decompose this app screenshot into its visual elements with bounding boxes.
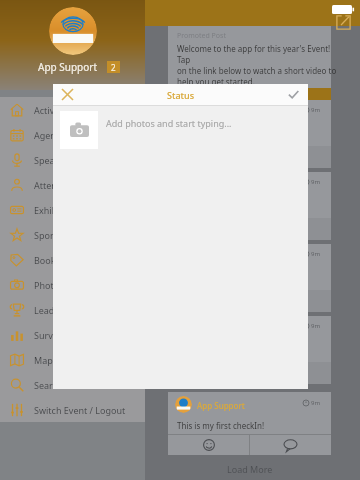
button[interactable]: Leaderboard (0, 297, 145, 322)
staticText: Speakers (34, 154, 73, 166)
button[interactable]: App Support (168, 392, 331, 455)
staticText: Agenda (34, 129, 67, 141)
staticText: This is my first checkIn! (177, 420, 265, 431)
staticText: Map (34, 354, 53, 366)
staticText: Welcome to the app for this year's Event… (177, 43, 340, 87)
staticText: Activity (34, 104, 65, 116)
button[interactable]: Load More (168, 458, 331, 480)
button[interactable]: Compose post (330, 9, 356, 35)
staticText: App Support (38, 60, 98, 74)
staticText: Search (34, 379, 63, 391)
staticText: Load More (227, 463, 273, 475)
staticText: 9m (311, 322, 321, 330)
button[interactable]: Add photo (60, 111, 98, 149)
staticText: 9m (311, 106, 321, 114)
button[interactable]: Submit (283, 84, 304, 105)
button[interactable]: Surveys (0, 322, 145, 347)
button[interactable]: Agenda (0, 122, 145, 147)
button[interactable]: Map (0, 347, 145, 372)
button[interactable]: Activity (0, 97, 145, 122)
button[interactable]: Close (57, 84, 78, 105)
button[interactable]: Speakers (0, 147, 145, 172)
button[interactable]: Exhibitors (0, 197, 145, 222)
staticText: Add photos and start typing... (106, 117, 232, 129)
staticText: Sponsors (34, 229, 74, 241)
staticText: 9m (311, 250, 321, 258)
button[interactable]: Search (0, 372, 145, 397)
staticText: App Support (197, 400, 245, 411)
staticText: Photos (34, 279, 64, 291)
staticText: 9m (311, 399, 321, 407)
staticText: Promoted Post (177, 31, 226, 41)
staticText: 9m (311, 178, 321, 186)
button[interactable]: Photos (0, 272, 145, 297)
staticText: Attendees (34, 179, 77, 191)
staticText: Surveys (34, 329, 67, 341)
button[interactable]: Promoted Post (168, 26, 331, 88)
button[interactable]: Attendees (0, 172, 145, 197)
staticText: Exhibitors (34, 204, 77, 216)
staticText: Bookmarks (34, 254, 82, 266)
staticText: Leaderboard (34, 304, 89, 316)
staticText: 2 (111, 62, 116, 73)
button[interactable]: Bookmarks (0, 247, 145, 272)
button[interactable]: Switch Event / Logout (0, 397, 145, 422)
button[interactable]: React (168, 435, 249, 455)
staticText: Switch Event / Logout (34, 404, 126, 416)
staticText: Status (167, 89, 195, 101)
button[interactable]: Travel HQ logo (49, 7, 97, 55)
button[interactable]: Comment (250, 435, 331, 455)
button[interactable]: Sponsors (0, 222, 145, 247)
